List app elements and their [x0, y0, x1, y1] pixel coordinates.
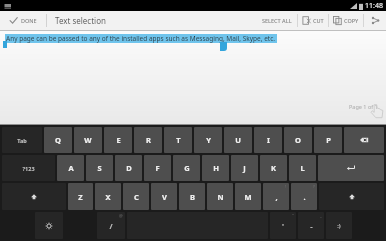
- staticText: -: [310, 221, 313, 231]
- button[interactable]: CUT: [298, 11, 328, 30]
- button[interactable]: SELECT ALL: [257, 11, 297, 30]
- staticText: E: [116, 135, 121, 145]
- button[interactable]: Share: [364, 11, 386, 30]
- staticText: D: [126, 163, 132, 173]
- staticText: K: [271, 163, 276, 173]
- staticText: Q: [55, 135, 61, 145]
- staticText: :): [337, 222, 341, 229]
- staticText: @: [119, 213, 123, 218]
- staticText: X: [105, 192, 111, 202]
- button[interactable]: Q: [44, 127, 72, 153]
- staticText: ,: [275, 192, 278, 202]
- staticText: Any page can be passed to any of the ins…: [6, 34, 276, 43]
- staticText: P: [326, 135, 331, 145]
- staticText: ": [292, 213, 294, 218]
- button[interactable]: E: [104, 127, 132, 153]
- button[interactable]: Shift: [319, 183, 384, 210]
- button[interactable]: A: [57, 155, 84, 181]
- button[interactable]: M: [235, 183, 261, 210]
- staticText: W: [84, 135, 92, 145]
- staticText: DONE: [21, 17, 37, 24]
- button[interactable]: D: [115, 155, 142, 181]
- staticText: N: [217, 192, 224, 202]
- button[interactable]: B: [179, 183, 205, 210]
- button[interactable]: O: [284, 127, 312, 153]
- staticText: 11:48: [365, 1, 383, 11]
- staticText: F: [155, 163, 160, 173]
- button[interactable]: .: [291, 183, 317, 210]
- staticText: S: [97, 163, 102, 173]
- button[interactable]: -: [298, 212, 324, 239]
- staticText: ': [282, 221, 284, 231]
- staticText: V: [162, 192, 167, 202]
- button[interactable]: Input settings: [35, 212, 63, 239]
- button[interactable]: Z: [68, 183, 93, 210]
- button[interactable]: N: [207, 183, 233, 210]
- button[interactable]: I: [254, 127, 282, 153]
- staticText: U: [235, 135, 241, 145]
- staticText: J: [243, 163, 246, 173]
- button[interactable]: H: [202, 155, 229, 181]
- button[interactable]: COPY: [329, 11, 363, 30]
- button[interactable]: G: [173, 155, 200, 181]
- button[interactable]: Tab: [2, 127, 42, 153]
- button[interactable]: W: [74, 127, 102, 153]
- staticText: SELECT ALL: [262, 17, 292, 24]
- button[interactable]: ': [270, 212, 296, 239]
- staticText: ?: [313, 184, 315, 189]
- staticText: Page 1 of 1: [349, 103, 378, 110]
- staticText: CUT: [313, 17, 324, 24]
- button[interactable]: ?123: [2, 155, 55, 181]
- staticText: Y: [206, 135, 211, 145]
- button[interactable]: U: [224, 127, 252, 153]
- button[interactable]: Y: [194, 127, 222, 153]
- staticText: .: [303, 192, 306, 202]
- button[interactable]: F: [144, 155, 171, 181]
- staticText: _: [320, 213, 322, 218]
- staticText: L: [300, 163, 305, 173]
- staticText: M: [244, 192, 252, 202]
- button[interactable]: S: [86, 155, 113, 181]
- staticText: Text selection: [55, 15, 106, 26]
- staticText: B: [190, 192, 195, 202]
- staticText: H: [213, 163, 219, 173]
- staticText: Z: [78, 192, 83, 202]
- button[interactable]: /: [97, 212, 125, 239]
- button[interactable]: J: [231, 155, 258, 181]
- staticText: !: [285, 184, 287, 189]
- staticText: COPY: [344, 17, 359, 24]
- staticText: ?123: [22, 165, 35, 172]
- button[interactable]: P: [314, 127, 342, 153]
- button[interactable]: L: [289, 155, 316, 181]
- button[interactable]: DONE: [5, 11, 41, 30]
- staticText: A: [68, 163, 74, 173]
- staticText: T: [176, 135, 181, 145]
- staticText: Tab: [17, 137, 27, 144]
- staticText: C: [134, 192, 139, 202]
- button[interactable]: ,: [263, 183, 289, 210]
- button[interactable]: T: [164, 127, 192, 153]
- staticText: O: [295, 135, 301, 145]
- button[interactable]: :): [326, 212, 352, 239]
- button[interactable]: K: [260, 155, 287, 181]
- button[interactable]: C: [123, 183, 149, 210]
- button[interactable]: Backspace: [344, 127, 384, 153]
- staticText: /: [109, 221, 113, 231]
- button[interactable]: V: [151, 183, 177, 210]
- staticText: R: [146, 135, 151, 145]
- staticText: G: [184, 163, 190, 173]
- staticText: I: [267, 135, 270, 145]
- button[interactable]: X: [95, 183, 121, 210]
- button[interactable]: Shift: [2, 183, 66, 210]
- button[interactable]: R: [134, 127, 162, 153]
- button[interactable]: Enter: [318, 155, 384, 181]
